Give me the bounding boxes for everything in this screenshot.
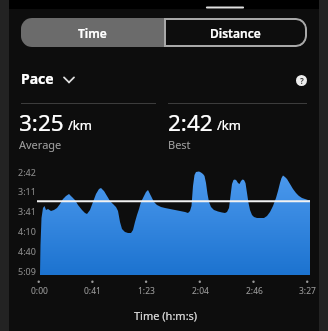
staticText: Best — [168, 137, 191, 152]
staticText: Average — [19, 137, 62, 152]
staticText: 2:42 — [18, 166, 36, 178]
staticText: 0:00 — [31, 285, 48, 297]
staticText: 3:25 — [19, 107, 64, 138]
button[interactable]: Time — [21, 18, 164, 47]
staticText: 3:11 — [18, 185, 36, 197]
staticText: Time — [78, 25, 107, 41]
staticText: ? — [300, 75, 304, 86]
staticText: 2:42 — [168, 107, 213, 138]
staticText: /km — [217, 116, 241, 134]
staticText: 3:41 — [18, 205, 36, 217]
staticText: 3:27 — [299, 285, 316, 297]
staticText: 2:46 — [246, 285, 263, 297]
staticText: Time (h:m:s) — [134, 308, 198, 323]
button[interactable]: Pace — [21, 69, 79, 87]
staticText: Distance — [210, 25, 261, 41]
button[interactable]: Distance — [164, 18, 307, 47]
button[interactable]: ? — [296, 75, 307, 86]
staticText: /km — [68, 116, 92, 134]
staticText: 2:04 — [192, 285, 209, 297]
staticText: 5:09 — [18, 265, 36, 277]
staticText: 0:41 — [84, 285, 101, 297]
staticText: 1:23 — [138, 285, 155, 297]
staticText: 4:10 — [18, 225, 36, 237]
staticText: 4:40 — [18, 245, 36, 257]
staticText: Pace — [21, 69, 54, 87]
